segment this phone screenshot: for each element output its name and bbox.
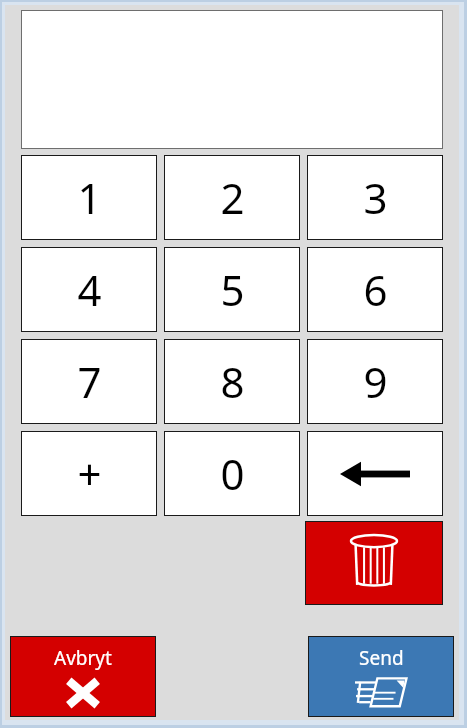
staticText: 3	[363, 169, 388, 226]
staticText: Avbryt	[54, 645, 112, 671]
button[interactable]: 3	[307, 155, 443, 240]
staticText: 6	[363, 261, 388, 318]
button[interactable]: 8	[164, 339, 300, 424]
staticText: 9	[363, 353, 388, 410]
staticText: 4	[77, 261, 102, 318]
button[interactable]: Backspace	[307, 431, 443, 516]
staticText: 8	[220, 353, 245, 410]
button[interactable]: 7	[21, 339, 157, 424]
button[interactable]: 2	[164, 155, 300, 240]
button[interactable]: Avbryt	[10, 636, 156, 717]
staticText: 0	[220, 445, 245, 502]
button[interactable]: +	[21, 431, 157, 516]
staticText: 7	[77, 353, 102, 410]
button[interactable]: 0	[164, 431, 300, 516]
button[interactable]: 5	[164, 247, 300, 332]
button[interactable]: 4	[21, 247, 157, 332]
button[interactable]	[21, 10, 443, 149]
button[interactable]: Delete	[305, 521, 443, 605]
staticText: 5	[220, 261, 245, 318]
button[interactable]: Send	[308, 636, 454, 717]
staticText: Send	[359, 645, 404, 671]
button[interactable]: 9	[307, 339, 443, 424]
staticText: 2	[220, 169, 245, 226]
staticText: 1	[77, 169, 102, 226]
staticText: +	[77, 445, 102, 502]
button[interactable]: 6	[307, 247, 443, 332]
button[interactable]: 1	[21, 155, 157, 240]
